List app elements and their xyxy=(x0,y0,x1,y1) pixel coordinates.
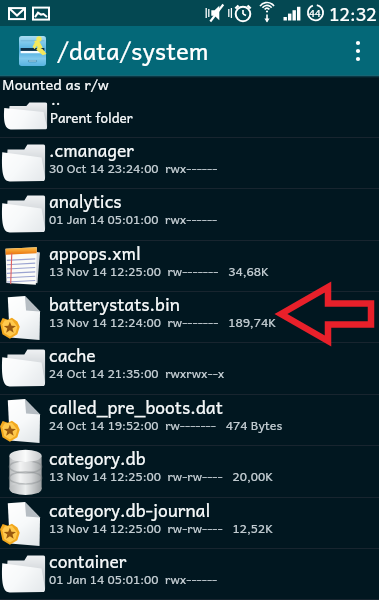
button[interactable]: analytics xyxy=(0,189,379,239)
staticText: Parent folder xyxy=(50,107,133,129)
button[interactable]: Root Explorer xyxy=(19,36,46,66)
staticText: appops.xml xyxy=(49,239,141,267)
button[interactable]: category.db-journal xyxy=(0,498,379,548)
staticText: category.db-journal xyxy=(49,496,211,524)
staticText: 30 Oct 14 23:24:00 rwx------ xyxy=(49,158,218,178)
button[interactable]: container xyxy=(0,549,379,599)
staticText: 13 Nov 14 12:25:00 rw------- 34,68K xyxy=(49,261,269,281)
staticText: .. xyxy=(51,87,61,111)
staticText: container xyxy=(49,547,127,575)
staticText: Mounted as r/w xyxy=(2,72,109,95)
staticText: 12:32 xyxy=(329,0,377,25)
staticText: 13 Nov 14 12:25:00 rw-rw---- 20,00K xyxy=(49,466,274,486)
button[interactable]: More options xyxy=(337,26,379,75)
staticText: 13 Nov 14 12:24:00 rw------- 189,74K xyxy=(49,312,277,332)
staticText: called_pre_boots.dat xyxy=(49,393,223,421)
button[interactable]: cache xyxy=(0,343,379,393)
staticText: category.db xyxy=(49,444,146,472)
button[interactable]: appops.xml xyxy=(0,241,379,291)
staticText: .cmanager xyxy=(49,136,134,164)
staticText: 24 Oct 14 21:35:00 rwxrwx--x xyxy=(49,363,225,383)
button[interactable]: .cmanager xyxy=(0,138,379,188)
staticText: 01 Jan 14 05:01:00 rwx------ xyxy=(49,209,218,229)
staticText: 13 Nov 14 12:25:00 rw-rw---- 12,52K xyxy=(49,518,274,538)
staticText: batterystats.bin xyxy=(49,290,180,318)
button[interactable]: batterystats.bin xyxy=(0,292,379,342)
staticText: /data/system xyxy=(57,31,209,70)
staticText: 01 Jan 14 05:01:00 rwx------ xyxy=(49,569,218,589)
staticText: analytics xyxy=(49,187,122,215)
button[interactable]: category.db xyxy=(0,446,379,496)
button[interactable]: called_pre_boots.dat xyxy=(0,395,379,445)
staticText: cache xyxy=(49,341,96,369)
button[interactable]: .. xyxy=(0,94,379,136)
staticText: 24 Oct 14 19:52:00 rw------- 474 Bytes xyxy=(49,415,283,435)
staticText: 44 xyxy=(309,5,321,21)
